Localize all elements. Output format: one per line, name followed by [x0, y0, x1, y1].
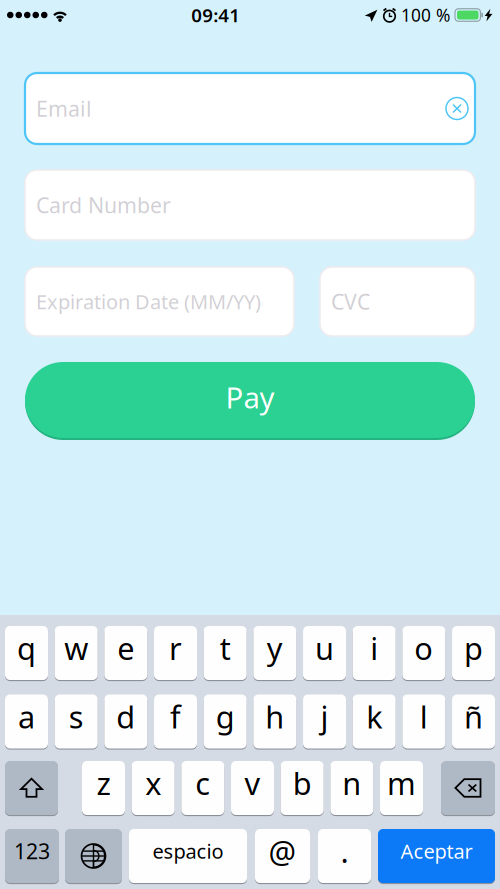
staticText: a — [18, 696, 35, 737]
button[interactable]: a — [5, 693, 48, 749]
staticText: o — [414, 628, 433, 668]
staticText: Expiration Date (MM/YY) — [36, 288, 261, 315]
staticText: g — [216, 696, 235, 737]
staticText: 123 — [14, 837, 50, 865]
staticText: l — [420, 696, 428, 737]
staticText: Pay — [225, 377, 274, 416]
staticText: b — [293, 763, 312, 803]
button[interactable]: f — [154, 693, 197, 749]
button[interactable]: @ — [255, 828, 310, 884]
button[interactable]: b — [281, 760, 324, 816]
staticText: CVC — [331, 287, 370, 316]
button[interactable]: k — [353, 693, 396, 749]
button[interactable]: ñ — [452, 693, 495, 749]
button[interactable]: q — [5, 625, 48, 681]
button[interactable]: Next keyboard — [65, 828, 122, 884]
staticText: 09:41 — [191, 3, 240, 27]
button[interactable]: j — [303, 693, 346, 749]
staticText: y — [267, 628, 283, 668]
button[interactable]: t — [204, 625, 247, 681]
button[interactable]: v — [231, 760, 274, 816]
staticText: q — [17, 628, 36, 668]
button[interactable]: s — [55, 693, 98, 749]
staticText: Email — [36, 94, 92, 123]
button[interactable]: Delete — [441, 760, 495, 816]
staticText: r — [169, 628, 182, 668]
staticText: Card Number — [36, 191, 171, 219]
staticText: @ — [268, 831, 296, 871]
staticText: f — [170, 696, 181, 737]
button[interactable]: n — [330, 760, 373, 816]
button[interactable]: z — [82, 760, 125, 816]
button[interactable]: 123 — [5, 828, 59, 884]
staticText: k — [366, 696, 382, 737]
button[interactable]: Clear text — [443, 94, 471, 122]
staticText: x — [145, 763, 161, 803]
staticText: n — [342, 763, 361, 803]
staticText: 100 % — [401, 3, 450, 26]
button[interactable]: y — [253, 625, 296, 681]
staticText: t — [220, 628, 231, 668]
button[interactable]: . — [318, 828, 371, 884]
staticText: j — [320, 696, 328, 737]
button[interactable]: u — [303, 625, 346, 681]
button[interactable]: i — [353, 625, 396, 681]
button[interactable]: x — [132, 760, 175, 816]
staticText: espacio — [152, 838, 223, 864]
button[interactable]: h — [253, 693, 296, 749]
button[interactable]: g — [204, 693, 247, 749]
staticText: s — [69, 696, 84, 737]
button[interactable]: e — [104, 625, 147, 681]
staticText: Aceptar — [400, 838, 472, 864]
staticText: u — [315, 628, 334, 668]
button[interactable]: Shift — [5, 760, 58, 816]
button[interactable]: o — [402, 625, 445, 681]
button[interactable]: d — [104, 693, 147, 749]
staticText: h — [265, 696, 284, 737]
staticText: m — [387, 763, 416, 803]
staticText: z — [96, 763, 110, 803]
staticText: . — [340, 831, 348, 871]
button[interactable]: w — [55, 625, 98, 681]
staticText: e — [117, 628, 134, 668]
button[interactable]: m — [380, 760, 423, 816]
staticText: w — [64, 628, 88, 668]
staticText: p — [464, 628, 483, 668]
button[interactable]: Pay — [25, 361, 475, 439]
button[interactable]: p — [452, 625, 495, 681]
button[interactable]: espacio — [129, 828, 247, 884]
button[interactable]: r — [154, 625, 197, 681]
button[interactable]: c — [181, 760, 224, 816]
staticText: v — [244, 763, 260, 803]
staticText: i — [370, 628, 378, 668]
button[interactable]: Aceptar — [378, 828, 495, 884]
staticText: c — [195, 763, 210, 803]
button[interactable]: l — [402, 693, 445, 749]
staticText: ñ — [464, 696, 483, 737]
staticText: d — [116, 696, 135, 737]
